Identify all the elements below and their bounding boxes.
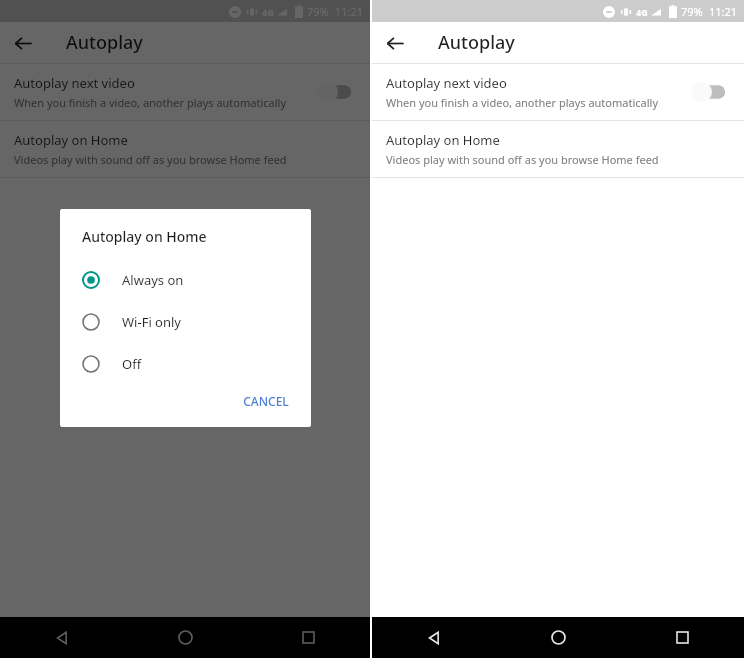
button[interactable]: Autoplay on Home [372, 121, 744, 177]
staticText: Autoplay next video [14, 74, 135, 92]
button[interactable]: Autoplay on Home [0, 121, 370, 177]
staticText: 79% [307, 4, 329, 19]
staticText: Always on [122, 271, 184, 289]
staticText: Autoplay next video [386, 74, 507, 92]
button[interactable]: Home [124, 617, 247, 658]
staticText: 79% [681, 4, 703, 19]
staticText: Autoplay [66, 30, 143, 55]
button[interactable]: Back [8, 28, 38, 58]
staticText: Autoplay on Home [82, 227, 207, 246]
staticText: 11:21 [335, 4, 364, 19]
staticText: When you finish a video, another plays a… [386, 95, 658, 110]
staticText: 11:21 [709, 4, 738, 19]
button[interactable]: Wi-Fi only [60, 301, 311, 343]
button[interactable]: Home [496, 617, 620, 658]
staticText: CANCEL [243, 393, 289, 409]
button[interactable]: Toggle autoplay next video [314, 75, 358, 109]
button[interactable]: Back [0, 617, 124, 658]
staticText: When you finish a video, another plays a… [14, 95, 286, 110]
button[interactable]: Always on [60, 259, 311, 301]
button[interactable]: Autoplay next video [372, 64, 744, 120]
button[interactable]: CANCEL [235, 387, 297, 415]
staticText: Videos play with sound off as you browse… [14, 152, 287, 167]
button[interactable]: Toggle autoplay next video [688, 75, 732, 109]
button[interactable]: Recent apps [247, 617, 370, 658]
button[interactable]: Back [380, 28, 410, 58]
button[interactable]: Recent apps [620, 617, 744, 658]
staticText: Autoplay on Home [386, 131, 500, 149]
staticText: Off [122, 355, 142, 373]
button[interactable]: Back [372, 617, 496, 658]
staticText: Wi-Fi only [122, 313, 181, 331]
staticText: Autoplay on Home [14, 131, 128, 149]
staticText: Videos play with sound off as you browse… [386, 152, 659, 167]
staticText: 4G [262, 6, 274, 18]
button[interactable]: Autoplay next video [0, 64, 370, 120]
staticText: 4G [636, 6, 648, 18]
button[interactable]: Off [60, 343, 311, 385]
staticText: Autoplay [438, 30, 515, 55]
